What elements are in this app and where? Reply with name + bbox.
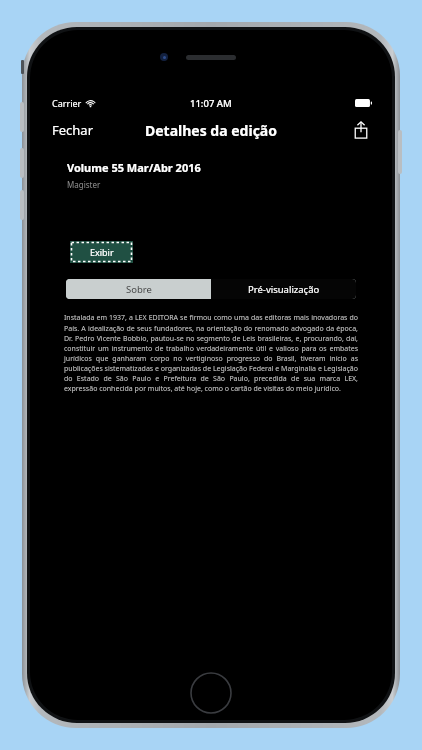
staticText: Carrier bbox=[52, 97, 82, 109]
staticText: Instalada em 1937, a LEX EDITORA se firm… bbox=[64, 313, 358, 393]
button[interactable]: Pré-visualização bbox=[211, 279, 356, 299]
button[interactable]: Share bbox=[346, 115, 376, 145]
button[interactable]: Fechar bbox=[38, 115, 108, 145]
staticText: Pré-visualização bbox=[248, 283, 320, 296]
staticText: Fechar bbox=[52, 121, 94, 139]
staticText: Exibir bbox=[90, 246, 114, 258]
staticText: Detalhes da edição bbox=[145, 121, 277, 140]
staticText: Volume 55 Mar/Abr 2016 bbox=[67, 160, 201, 175]
staticText: Magister bbox=[67, 179, 101, 190]
button[interactable]: Exibir bbox=[70, 241, 133, 263]
staticText: Sobre bbox=[126, 283, 152, 296]
button[interactable]: Sobre bbox=[66, 279, 211, 299]
staticText: 11:07 AM bbox=[190, 97, 232, 110]
